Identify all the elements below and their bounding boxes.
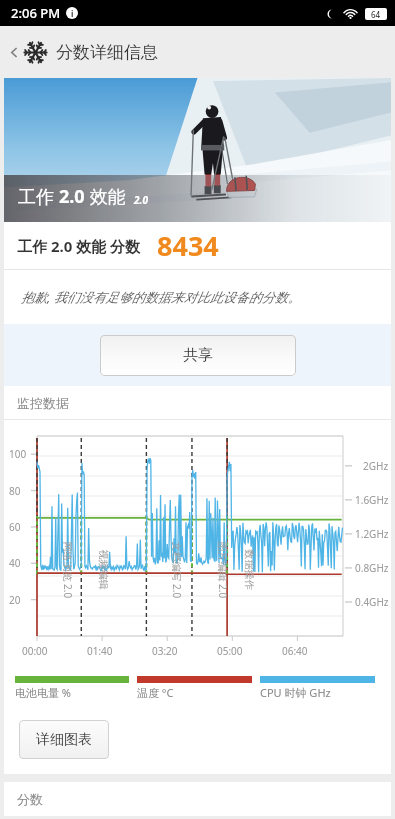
staticText: 数据操作 — [242, 549, 255, 589]
staticText: 网络浏览 2.0 — [60, 541, 74, 598]
staticText: 2.0 — [134, 193, 148, 207]
staticText: CPU 时钟 GHz — [260, 685, 331, 700]
staticText: 电池电量 % — [15, 685, 72, 700]
staticText: 2.0 — [59, 184, 85, 209]
staticText: 效能 — [85, 184, 126, 209]
staticText: 分数 — [17, 791, 43, 807]
staticText: 监控数据 — [17, 395, 69, 411]
staticText: 共享 — [183, 346, 213, 365]
staticText: 64 — [371, 9, 381, 20]
staticText: 1.2GHz — [355, 527, 389, 541]
staticText: 20 — [9, 593, 21, 607]
staticText: i — [71, 8, 74, 19]
staticText: 0.4GHz — [355, 595, 389, 609]
staticText: 60 — [9, 520, 21, 534]
staticText: 03:20 — [152, 644, 178, 658]
staticText: 温度 °C — [137, 685, 174, 700]
staticText: 8434 — [157, 227, 219, 264]
staticText: 视频编辑 — [96, 549, 109, 589]
staticText: 详细图表 — [36, 731, 92, 749]
staticText: 06:40 — [282, 644, 308, 658]
staticText: 文档编写 2.0 — [169, 541, 183, 598]
staticText: 40 — [9, 556, 21, 570]
staticText: 01:40 — [87, 644, 113, 658]
staticText: 1.6GHz — [355, 493, 389, 507]
staticText: 0.8GHz — [355, 561, 389, 575]
staticText: 00:00 — [22, 644, 48, 658]
staticText: 抱歉, 我们没有足够的数据来对比此设备的分数。 — [21, 288, 301, 306]
staticText: 100 — [9, 447, 27, 461]
staticText: 80 — [9, 484, 21, 498]
staticText: 2:06 PM — [11, 4, 61, 22]
staticText: 图片编辑 2.0 — [215, 541, 229, 598]
staticText: 05:00 — [217, 644, 243, 658]
button[interactable]: 工作 — [4, 78, 391, 222]
button[interactable]: 详细图表 — [19, 720, 109, 759]
button[interactable]: Back — [0, 26, 395, 78]
staticText: 工作 — [18, 184, 59, 209]
staticText: 2GHz — [363, 459, 389, 473]
staticText: 分数详细信息 — [56, 42, 158, 63]
button[interactable]: 共享 — [100, 335, 296, 376]
staticText: 工作 2.0 效能 分数 — [17, 236, 141, 256]
other: Back — [7, 45, 22, 60]
